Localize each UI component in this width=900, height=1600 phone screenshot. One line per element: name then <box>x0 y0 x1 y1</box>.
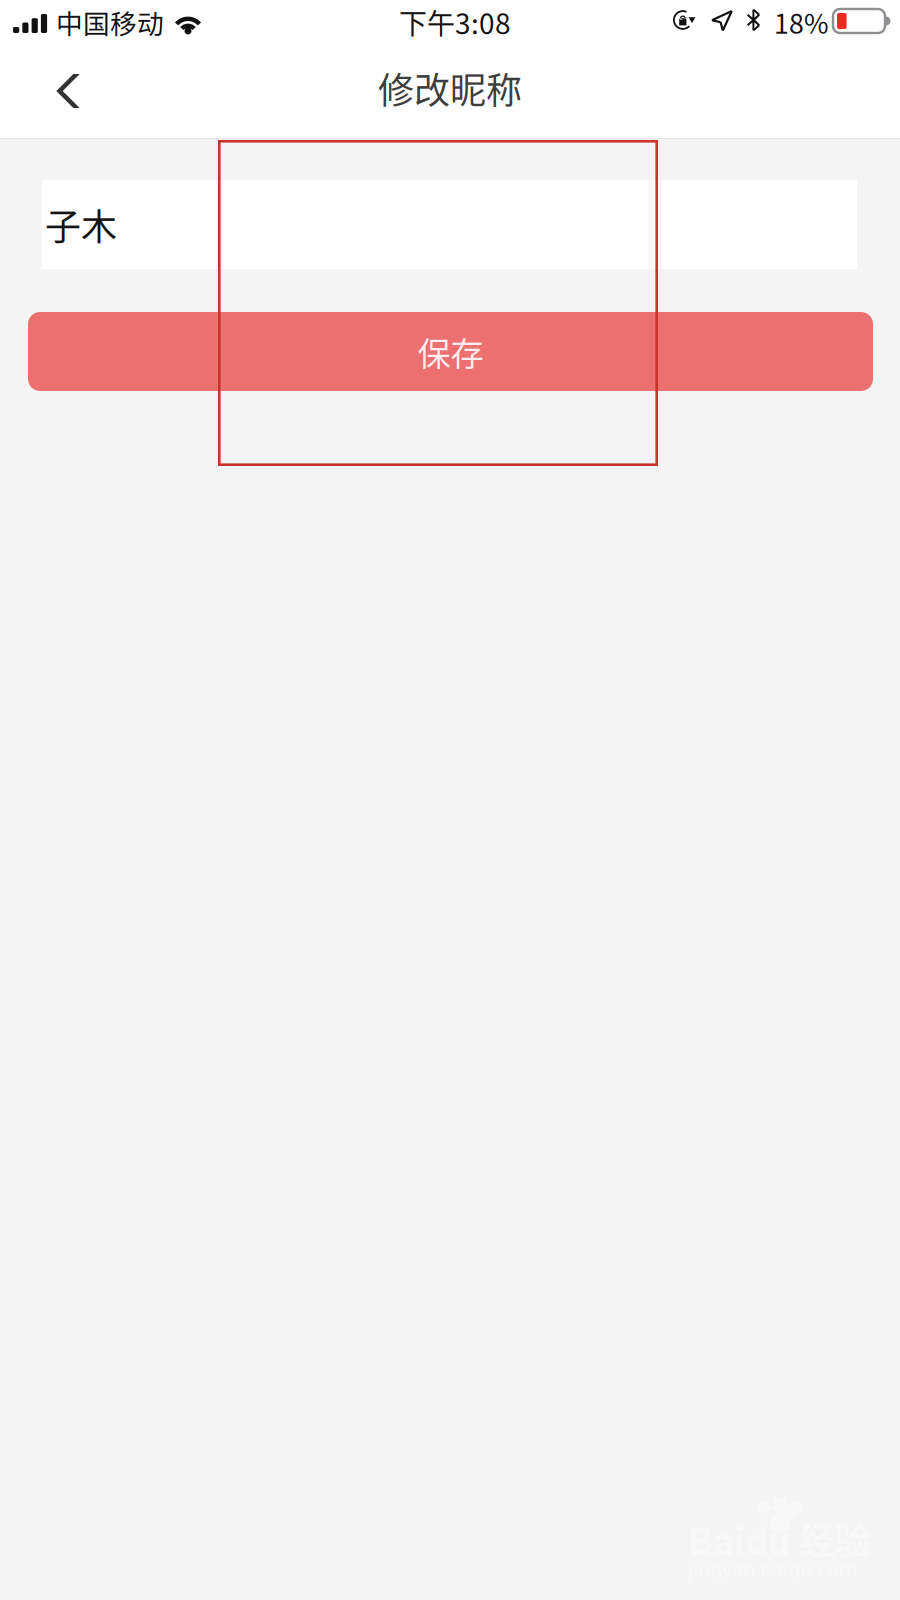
button[interactable]: 子木 <box>0 0 900 1600</box>
staticText: 下午3:08 <box>399 2 511 42</box>
staticText: 中国移动 <box>56 3 164 41</box>
button[interactable]: 保存 <box>0 0 900 1600</box>
staticText: 18% <box>774 3 829 41</box>
staticText: 子木 <box>45 198 117 250</box>
staticText: 修改昵称 <box>378 62 522 114</box>
staticText: 保存 <box>417 327 483 376</box>
button[interactable]: 返回 <box>0 0 900 1600</box>
